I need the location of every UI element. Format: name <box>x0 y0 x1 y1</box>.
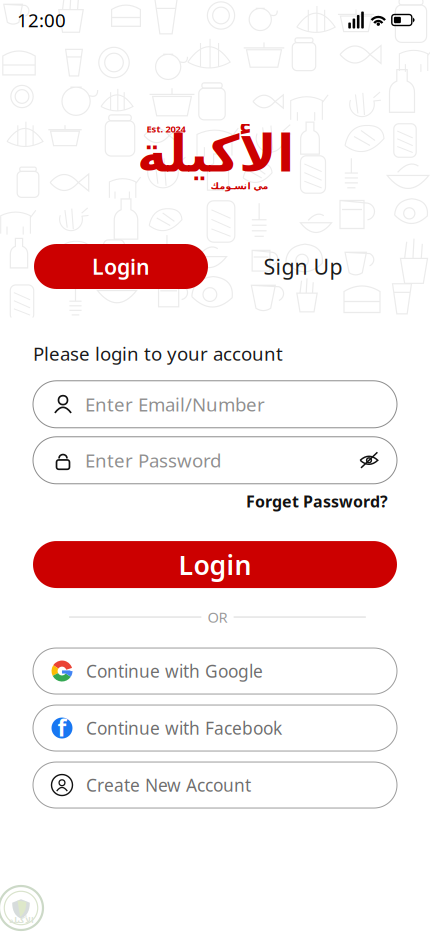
staticText: Enter Email/Number <box>85 392 265 417</box>
staticText: Create New Account <box>86 773 251 796</box>
staticText: الأكيلة <box>136 125 293 183</box>
staticText: Please login to your account <box>33 341 283 366</box>
staticText: مي انسـومك <box>210 181 268 191</box>
button[interactable]: Sign Up <box>208 244 398 289</box>
staticText: Sign Up <box>263 252 342 281</box>
button[interactable]: Continue with Google <box>33 648 397 694</box>
staticText: الأكيلة <box>8 916 33 925</box>
button[interactable]: Login <box>34 244 208 289</box>
button[interactable]: Forget Password? <box>246 491 388 512</box>
staticText: Login <box>178 547 251 582</box>
staticText: Est. 2024 <box>146 123 185 135</box>
staticText: Forget Password? <box>246 491 388 512</box>
staticText: OR <box>207 607 227 627</box>
button[interactable]: Login <box>33 541 397 588</box>
button[interactable]: f <box>33 705 397 751</box>
staticText: Continue with Facebook <box>86 716 282 739</box>
button[interactable]: Create New Account <box>33 762 397 808</box>
button[interactable]: Show password <box>347 438 391 483</box>
staticText: 12:00 <box>17 8 66 32</box>
staticText: Enter Password <box>85 448 221 473</box>
staticText: Continue with Google <box>86 659 263 682</box>
staticText: f <box>57 713 66 743</box>
staticText: Login <box>92 252 150 281</box>
